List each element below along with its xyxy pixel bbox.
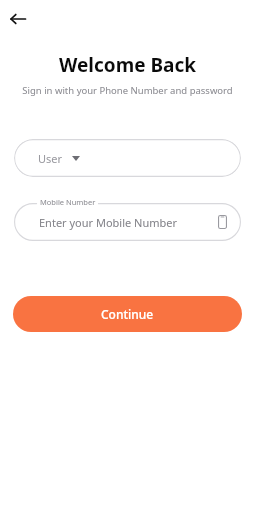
staticText: User [38, 151, 63, 166]
staticText: Welcome Back [0, 52, 255, 78]
button[interactable]: Back [4, 5, 32, 33]
button[interactable]: Enter your Mobile Number [14, 197, 241, 241]
button[interactable]: User [14, 139, 241, 177]
staticText: Continue [101, 306, 154, 322]
staticText: Mobile Number [40, 197, 96, 207]
staticText: Enter your Mobile Number [39, 215, 178, 230]
staticText: Sign in with your Phone Number and passw… [0, 84, 255, 97]
button[interactable]: Continue [13, 296, 242, 332]
